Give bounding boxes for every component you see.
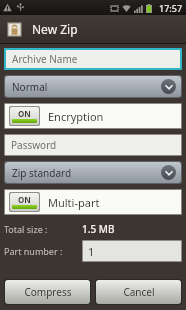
staticText: Cancel	[123, 285, 155, 299]
button[interactable]: Compress	[5, 280, 90, 304]
staticText: Archive Name	[12, 52, 78, 66]
staticText: Total size :	[4, 223, 82, 235]
staticText: Encryption	[48, 109, 104, 124]
staticText: Multi-part	[48, 195, 100, 210]
button[interactable]: Archive Name	[6, 50, 180, 68]
button[interactable]: Toggle on	[5, 104, 181, 128]
staticText: Password	[11, 138, 57, 152]
button[interactable]: Toggle on	[5, 190, 181, 214]
staticText: 1.5 MB	[82, 222, 115, 236]
staticText: Compress	[24, 285, 72, 299]
staticText: New Zip	[32, 21, 78, 37]
staticText: 17:57	[159, 2, 183, 14]
staticText: Normal	[12, 80, 48, 94]
staticText: ON	[18, 108, 31, 119]
other: Toggle on	[10, 193, 39, 211]
button[interactable]: Cancel	[96, 280, 181, 304]
other: Toggle on	[10, 107, 39, 125]
button[interactable]: Zip standard	[5, 162, 181, 183]
staticText: 1	[88, 244, 95, 259]
button[interactable]: 1	[83, 241, 181, 261]
staticText: ON	[18, 194, 31, 205]
staticText: Zip standard	[12, 166, 72, 180]
button[interactable]: Normal	[5, 76, 181, 97]
button[interactable]: Password	[5, 135, 181, 155]
staticText: Part number :	[4, 245, 82, 257]
